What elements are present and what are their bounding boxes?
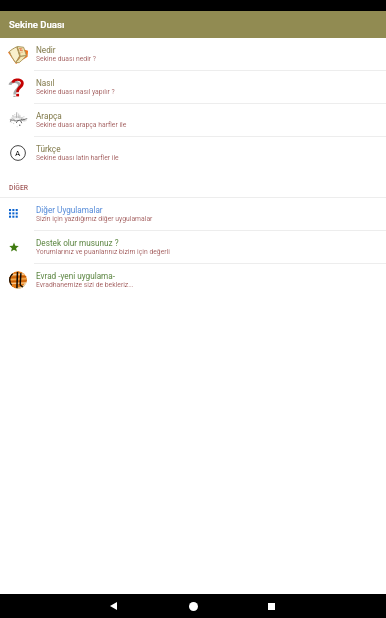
button[interactable]: Back (101, 594, 125, 618)
button[interactable]: Recents (259, 594, 283, 618)
staticText: Arapça (36, 111, 62, 121)
staticText: Sekine duası nedir ? (36, 55, 96, 63)
button[interactable]: Nedir (0, 38, 386, 70)
staticText: Evrad -yeni uygulama- (36, 271, 115, 281)
button[interactable]: Destek olur musunuz ? (0, 231, 386, 263)
staticText: Yorumlarınız ve puanlarınız bizim için d… (36, 248, 170, 256)
button[interactable]: Diğer Uygulamalar (0, 198, 386, 230)
staticText: Diğer Uygulamalar (36, 205, 103, 215)
staticText: Nedir (36, 45, 56, 55)
staticText: Türkçe (36, 144, 61, 154)
staticText: Sekine duası latin harfler ile (36, 154, 119, 162)
button[interactable]: Nasıl (0, 71, 386, 103)
staticText: Sekine Duası (9, 19, 65, 30)
staticText: A (15, 149, 21, 158)
button[interactable]: A (0, 137, 386, 169)
staticText: Nasıl (36, 78, 55, 88)
staticText: Destek olur musunuz ? (36, 238, 119, 248)
button[interactable]: Home (181, 594, 205, 618)
staticText: Evradhanemize sizi de bekleriz... (36, 281, 134, 289)
staticText: Sizin için yazdığımız diğer uygulamalar (36, 215, 153, 223)
staticText: Sekine duası nasıl yapılır ? (36, 88, 115, 96)
button[interactable]: Evrad -yeni uygulama- (0, 264, 386, 296)
staticText: DİĞER (9, 184, 29, 192)
button[interactable]: Arapça (0, 104, 386, 136)
staticText: Sekine duası arapça harfler ile (36, 121, 127, 129)
